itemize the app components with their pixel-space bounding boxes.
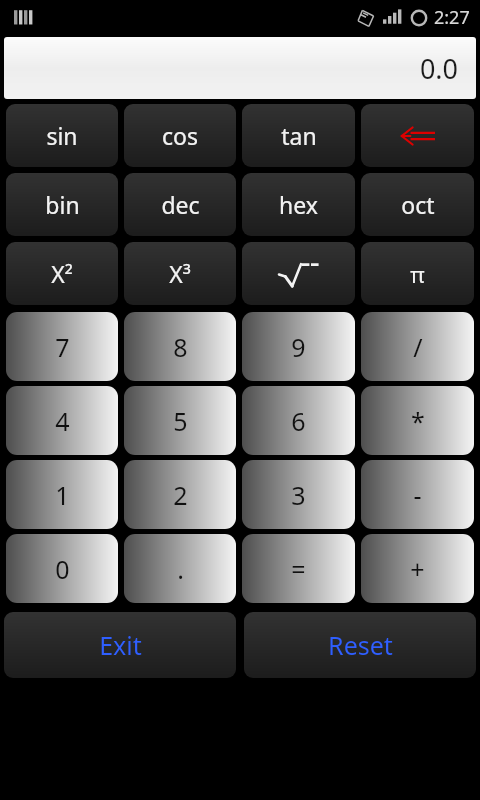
- staticText: 5: [173, 404, 188, 438]
- staticText: .: [177, 552, 184, 586]
- staticText: +: [410, 552, 425, 586]
- button[interactable]: .: [124, 534, 236, 603]
- staticText: 2:27: [434, 5, 470, 30]
- button[interactable]: 4: [6, 386, 118, 455]
- staticText: tan: [281, 120, 317, 151]
- staticText: cos: [162, 120, 198, 151]
- staticText: sin: [46, 120, 78, 151]
- button[interactable]: 2: [124, 460, 236, 529]
- button[interactable]: 6: [242, 386, 355, 455]
- button[interactable]: cos: [124, 104, 236, 167]
- button[interactable]: Square root: [242, 242, 355, 305]
- button[interactable]: *: [361, 386, 474, 455]
- button[interactable]: 3: [242, 460, 355, 529]
- staticText: 8: [173, 330, 188, 364]
- button[interactable]: Backspace: [361, 104, 474, 167]
- staticText: 6: [291, 404, 306, 438]
- button[interactable]: /: [361, 312, 474, 381]
- staticText: π: [410, 259, 425, 289]
- button[interactable]: 9: [242, 312, 355, 381]
- button[interactable]: π: [361, 242, 474, 305]
- button[interactable]: dec: [124, 173, 236, 236]
- staticText: hex: [279, 189, 318, 220]
- staticText: 4: [55, 404, 70, 438]
- button[interactable]: -: [361, 460, 474, 529]
- button[interactable]: hex: [242, 173, 355, 236]
- button[interactable]: 8: [124, 312, 236, 381]
- button[interactable]: tan: [242, 104, 355, 167]
- button[interactable]: sin: [6, 104, 118, 167]
- staticText: oct: [401, 189, 435, 220]
- staticText: 1: [55, 478, 70, 512]
- button[interactable]: 0: [6, 534, 118, 603]
- button[interactable]: =: [242, 534, 355, 603]
- staticText: X³: [169, 258, 191, 289]
- button[interactable]: bin: [6, 173, 118, 236]
- button[interactable]: 0.0: [4, 37, 476, 99]
- button[interactable]: Exit: [4, 612, 236, 678]
- staticText: dec: [161, 189, 200, 220]
- button[interactable]: X²: [6, 242, 118, 305]
- staticText: 9: [291, 330, 306, 364]
- button[interactable]: oct: [361, 173, 474, 236]
- staticText: 2: [173, 478, 188, 512]
- staticText: bin: [45, 189, 80, 220]
- button[interactable]: Reset: [244, 612, 476, 678]
- staticText: *: [411, 404, 425, 438]
- button[interactable]: 1: [6, 460, 118, 529]
- staticText: -: [413, 478, 422, 512]
- button[interactable]: X³: [124, 242, 236, 305]
- staticText: 0: [55, 552, 70, 586]
- staticText: 7: [55, 330, 70, 364]
- staticText: X²: [51, 258, 73, 289]
- staticText: /: [413, 330, 423, 364]
- staticText: 0.0: [419, 50, 458, 87]
- button[interactable]: 7: [6, 312, 118, 381]
- staticText: =: [291, 552, 306, 586]
- staticText: Exit: [99, 628, 142, 662]
- staticText: Reset: [328, 628, 393, 662]
- staticText: 3: [291, 478, 306, 512]
- button[interactable]: +: [361, 534, 474, 603]
- button[interactable]: 5: [124, 386, 236, 455]
